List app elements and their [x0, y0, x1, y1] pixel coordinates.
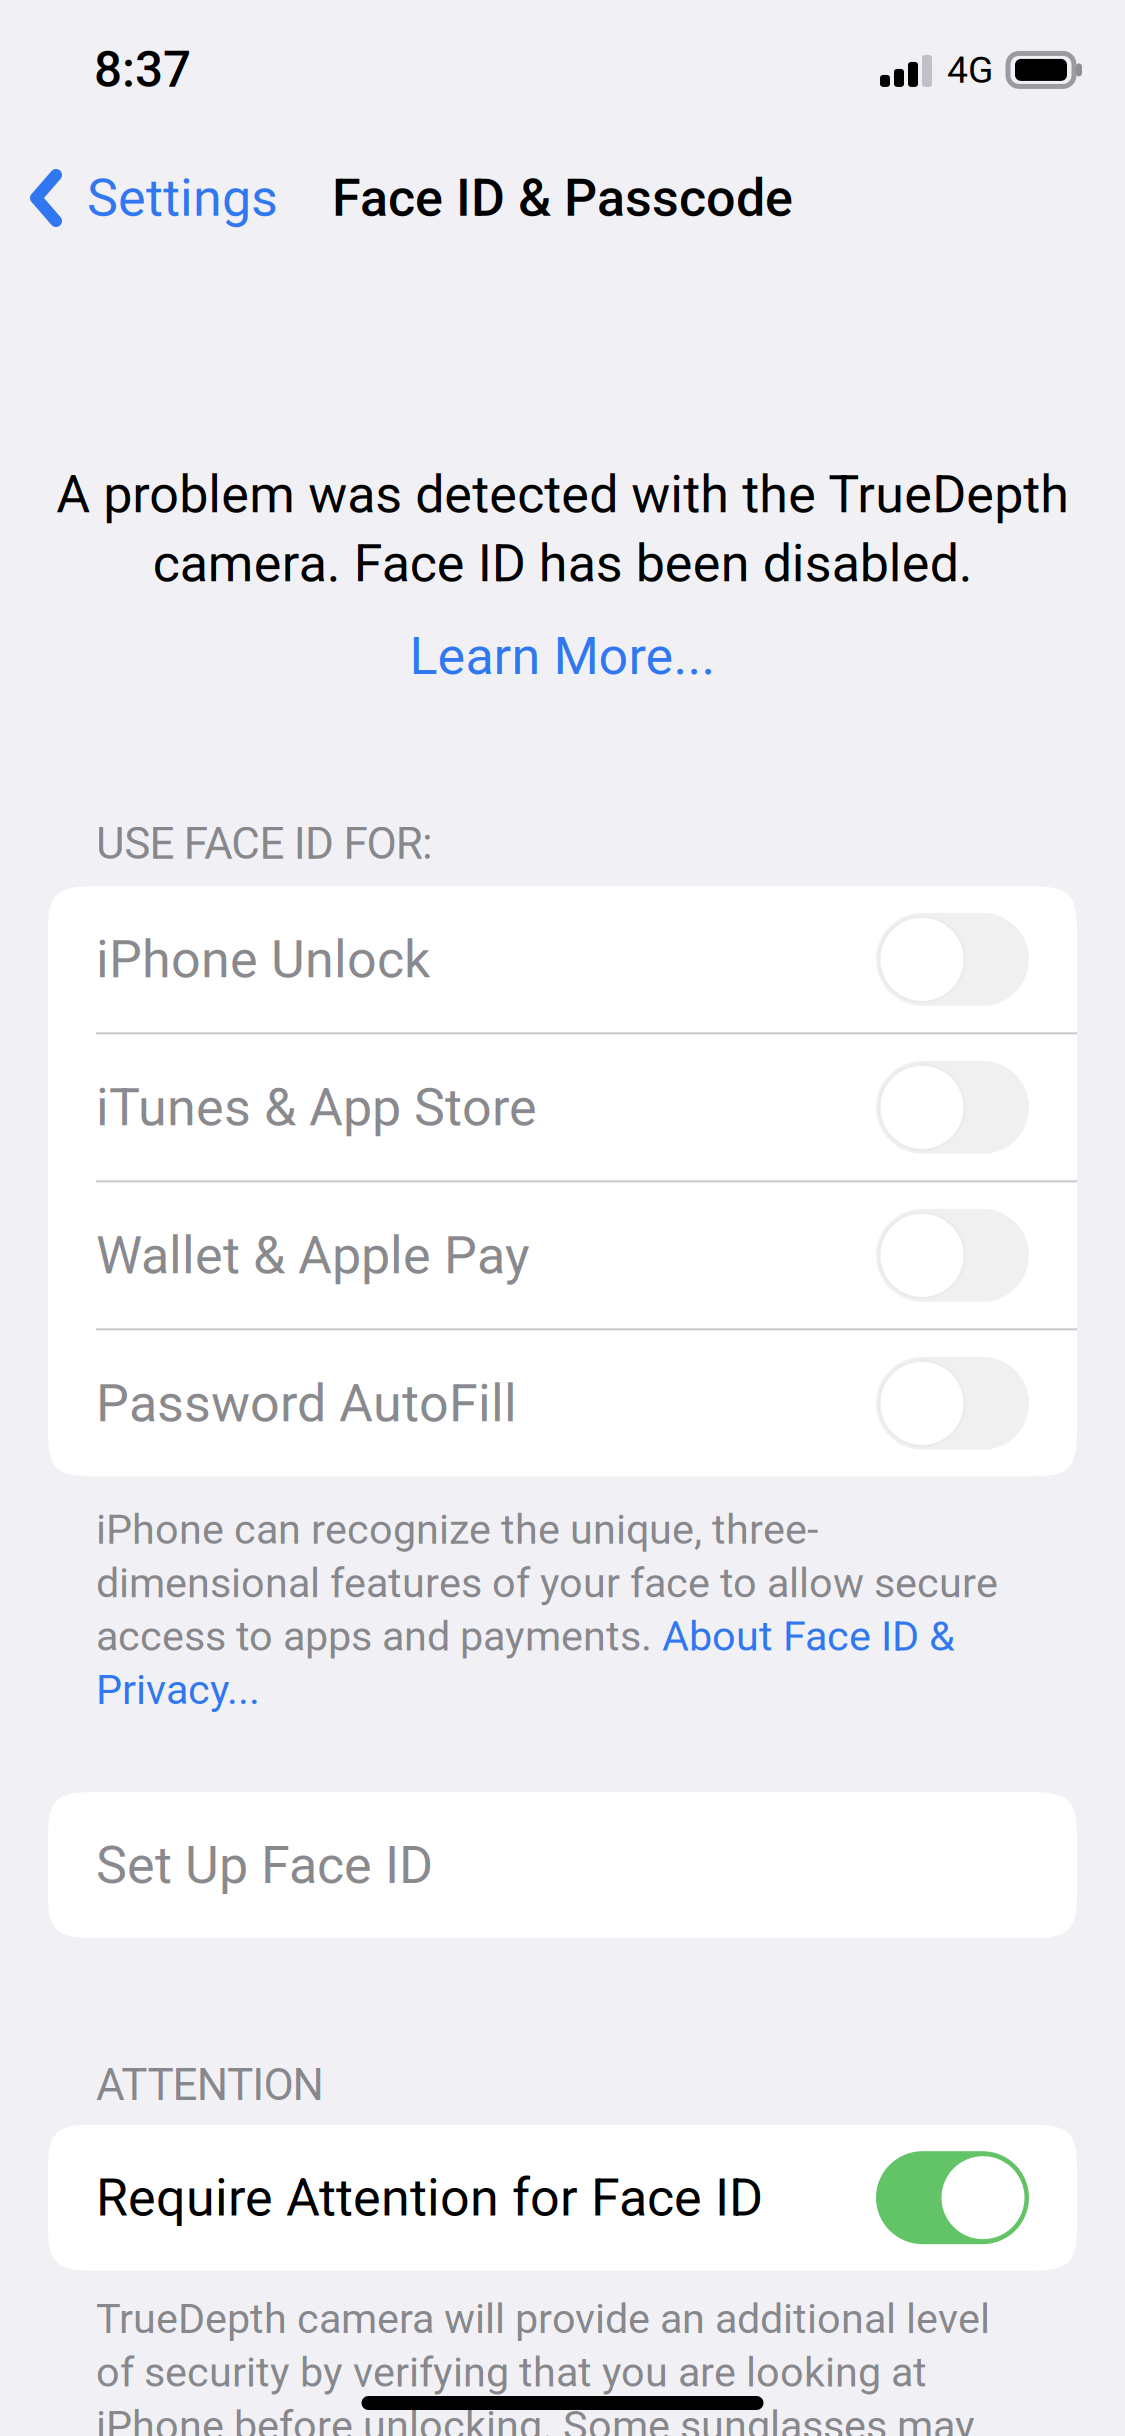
staticText: iTunes & App Store — [96, 1077, 537, 1138]
staticText: TrueDepth camera will provide an additio… — [96, 2295, 990, 2436]
staticText: A problem was detected with the TrueDept… — [56, 464, 1069, 594]
staticText: iPhone can recognize the unique, three-d… — [96, 1505, 998, 1714]
button[interactable]: iPhone Unlock — [48, 886, 1077, 1032]
staticText: Wallet & Apple Pay — [96, 1225, 530, 1286]
staticText: Face ID & Passcode — [332, 167, 793, 228]
staticText: iPhone Unlock — [96, 929, 430, 990]
staticText: Learn More... — [409, 626, 715, 687]
button[interactable]: iTunes & App Store — [48, 1034, 1077, 1180]
staticText: Password AutoFill — [96, 1373, 517, 1434]
staticText: ATTENTION — [96, 2059, 324, 2111]
button[interactable]: Learn More... — [389, 594, 735, 687]
button[interactable]: Set Up Face ID — [48, 1792, 1077, 1938]
staticText: 8:37 — [94, 41, 191, 99]
button[interactable]: Wallet & Apple Pay — [48, 1182, 1077, 1328]
staticText: 4G — [947, 48, 993, 92]
staticText: Set Up Face ID — [96, 1835, 433, 1896]
staticText: USE FACE ID FOR: — [96, 818, 433, 869]
button[interactable]: Password AutoFill — [48, 1330, 1077, 1476]
button[interactable]: Require Attention for Face ID — [48, 2125, 1077, 2271]
button[interactable]: Settings — [0, 132, 302, 264]
staticText: Require Attention for Face ID — [96, 2167, 763, 2228]
staticText: Settings — [87, 167, 278, 228]
